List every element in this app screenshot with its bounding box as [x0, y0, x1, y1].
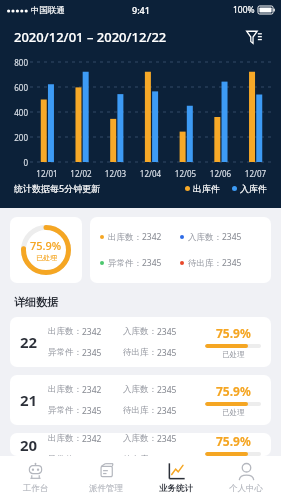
staticText: 2345: [157, 347, 177, 359]
staticText: 0: [23, 157, 28, 168]
staticText: 75.9%: [216, 433, 251, 449]
staticText: 异常件：: [48, 405, 82, 416]
staticText: 2345: [82, 347, 102, 359]
staticText: 出库数：: [108, 232, 142, 243]
staticText: 工作台: [23, 483, 49, 494]
staticText: 异常件：: [48, 347, 82, 358]
button[interactable]: 工作台: [0, 456, 71, 500]
staticText: 待出库：: [188, 258, 222, 269]
staticText: 2342: [82, 326, 102, 338]
staticText: 2345: [157, 433, 177, 445]
staticText: 800: [14, 57, 28, 68]
staticText: 出库数：: [48, 326, 82, 337]
staticText: 业务统计: [159, 483, 193, 494]
staticText: 75.9%: [216, 383, 251, 399]
button[interactable]: 派件管理: [71, 456, 141, 500]
staticText: 12/05: [168, 168, 203, 179]
staticText: 22: [20, 332, 38, 352]
staticText: 75.9%: [30, 238, 62, 253]
staticText: 异常件：: [108, 258, 142, 269]
staticText: 入库数：: [123, 326, 157, 337]
staticText: 75.9%: [216, 325, 251, 341]
staticText: 出库数：: [48, 384, 82, 395]
staticText: 入库数：: [123, 384, 157, 395]
staticText: 2345: [142, 257, 162, 269]
staticText: 已处理: [222, 408, 245, 417]
staticText: 12/02: [64, 168, 98, 179]
button[interactable]: Filter: [241, 24, 267, 50]
staticText: 12/06: [203, 168, 238, 179]
staticText: 待出库：: [123, 454, 157, 456]
button[interactable]: 个人中心: [211, 456, 281, 500]
staticText: 已处理: [36, 253, 57, 262]
staticText: 2020/12/01 – 2020/12/22: [14, 28, 167, 46]
staticText: 入库数：: [188, 232, 222, 243]
staticText: 2345: [157, 326, 177, 338]
staticText: 2342: [82, 384, 102, 396]
staticText: 待出库：: [123, 405, 157, 416]
button[interactable]: 21: [10, 375, 271, 425]
staticText: 入库数：: [123, 433, 157, 444]
staticText: 2345: [222, 257, 242, 269]
staticText: 12/03: [98, 168, 133, 179]
staticText: 12/04: [133, 168, 168, 179]
staticText: 统计数据每5分钟更新: [14, 182, 101, 194]
staticText: 详细数据: [14, 295, 58, 309]
staticText: 个人中心: [229, 483, 263, 494]
button[interactable]: 22: [10, 317, 271, 367]
staticText: 600: [14, 82, 28, 93]
staticText: 9:41: [132, 4, 150, 16]
staticText: 20: [20, 435, 38, 455]
staticText: 100%: [233, 4, 255, 16]
staticText: 21: [20, 390, 38, 410]
button[interactable]: 20: [10, 433, 271, 456]
staticText: 200: [14, 132, 28, 143]
button[interactable]: 75.9%: [10, 217, 82, 283]
staticText: 入库件: [240, 183, 267, 194]
staticText: 2342: [142, 231, 162, 243]
staticText: 中国联通: [31, 5, 65, 16]
button[interactable]: 业务统计: [141, 456, 211, 500]
staticText: 12/01: [30, 168, 64, 179]
staticText: 出库件: [193, 183, 220, 194]
staticText: 2345: [157, 384, 177, 396]
staticText: 已处理: [222, 350, 245, 359]
staticText: 400: [14, 107, 28, 118]
staticText: 待出库：: [123, 347, 157, 358]
staticText: 异常件：: [48, 454, 82, 456]
staticText: 2342: [82, 433, 102, 445]
staticText: 2345: [222, 231, 242, 243]
staticText: 2345: [82, 405, 102, 417]
button[interactable]: 出库数：: [90, 217, 271, 283]
staticText: 12/07: [238, 168, 273, 179]
staticText: 2345: [157, 405, 177, 417]
staticText: 派件管理: [89, 483, 123, 494]
staticText: 出库数：: [48, 433, 82, 444]
